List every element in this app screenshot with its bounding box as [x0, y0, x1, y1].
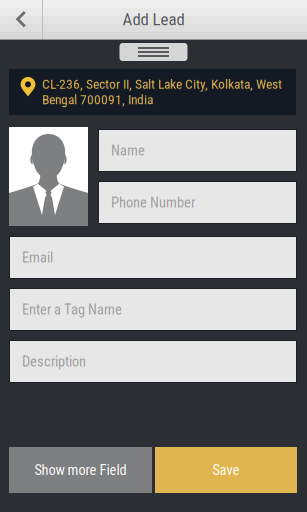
button[interactable]: Email: [9, 236, 297, 279]
staticText: Add Lead: [122, 10, 184, 29]
staticText: Show more Field: [34, 462, 126, 478]
staticText: Phone Number: [111, 194, 195, 211]
button[interactable]: Menu: [119, 43, 187, 61]
staticText: CL-236, Sector II, Salt Lake City, Kolka…: [42, 76, 282, 108]
button[interactable]: Description: [9, 340, 297, 383]
staticText: Save: [212, 462, 239, 478]
button[interactable]: Back: [0, 0, 42, 39]
button[interactable]: Name: [98, 129, 297, 172]
staticText: Name: [111, 142, 145, 159]
button[interactable]: Show more Field: [9, 447, 152, 493]
staticText: Description: [22, 353, 86, 370]
staticText: Email: [22, 249, 53, 266]
button[interactable]: Phone Number: [98, 181, 297, 224]
button[interactable]: Enter a Tag Name: [9, 288, 297, 331]
button[interactable]: Save: [155, 447, 297, 493]
staticText: Enter a Tag Name: [22, 301, 122, 318]
